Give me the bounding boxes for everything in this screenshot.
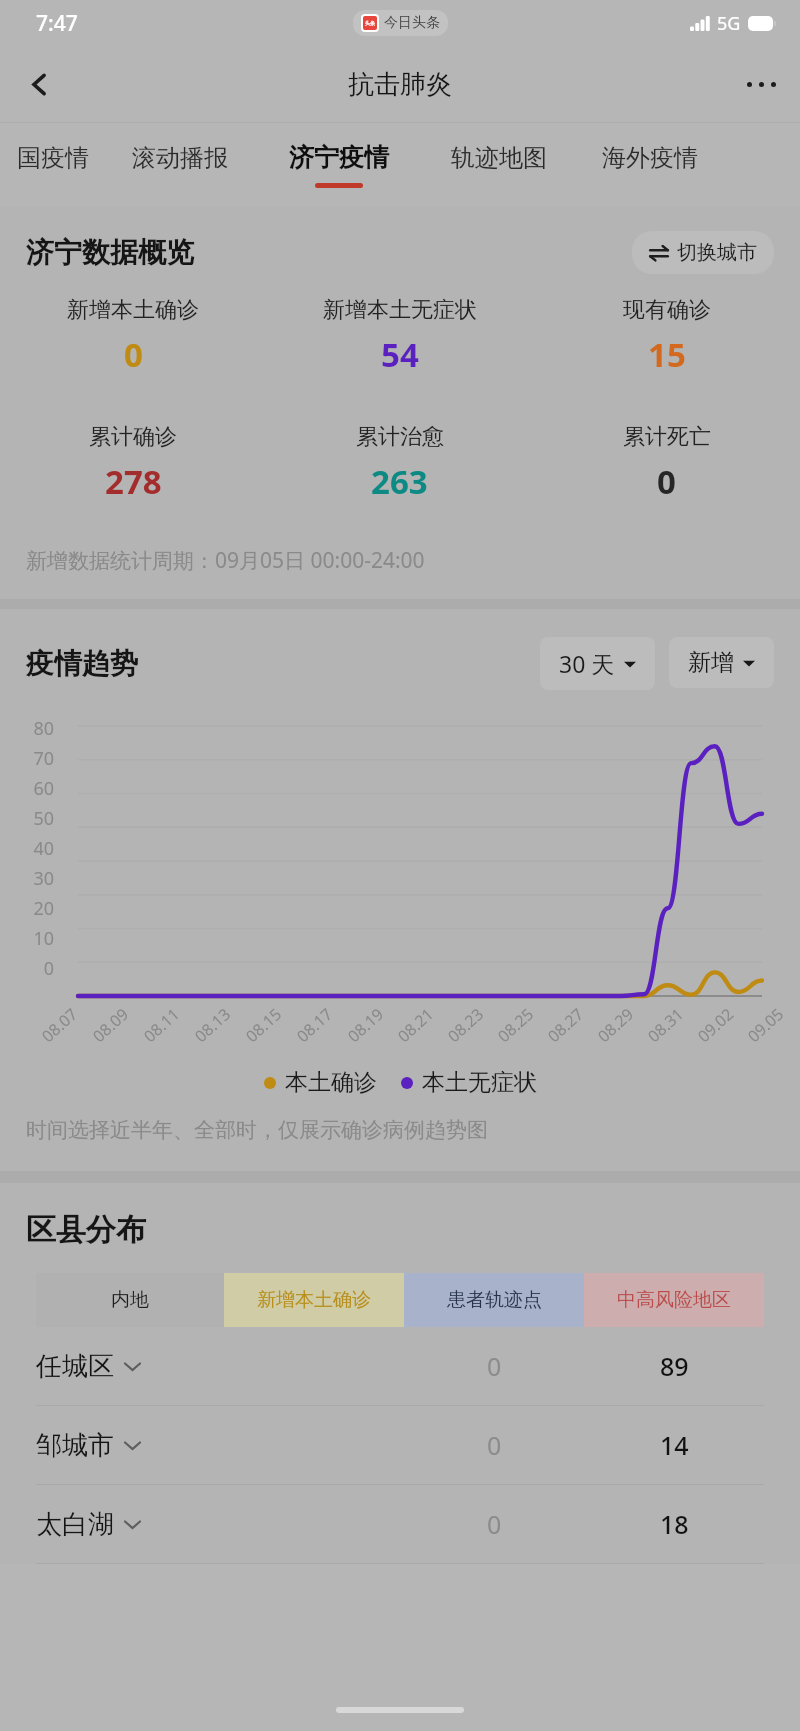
staticText: 海外疫情 bbox=[602, 143, 698, 173]
button[interactable]: 新增 bbox=[669, 637, 774, 688]
staticText: 累计确诊 bbox=[89, 423, 177, 451]
staticText: 60 bbox=[0, 776, 54, 801]
staticText: 08.19 bbox=[343, 1003, 388, 1047]
staticText: 20 bbox=[0, 896, 54, 921]
staticText: 新增本土确诊 bbox=[257, 1288, 371, 1312]
button[interactable]: 累计死亡 bbox=[533, 423, 800, 504]
staticText: 疫情趋势 bbox=[26, 646, 138, 681]
button[interactable]: 现有确诊 bbox=[533, 296, 800, 377]
button[interactable]: 本土确诊 bbox=[264, 1068, 377, 1097]
staticText: 40 bbox=[0, 836, 54, 861]
staticText: 7:47 bbox=[36, 9, 78, 38]
staticText: 08.23 bbox=[443, 1003, 488, 1047]
staticText: 新增本土确诊 bbox=[67, 296, 199, 324]
button[interactable]: 新增本土确诊 bbox=[0, 296, 266, 377]
staticText: 08.21 bbox=[393, 1003, 438, 1047]
button[interactable]: 海外疫情 bbox=[575, 123, 725, 207]
button[interactable]: 国疫情 bbox=[0, 123, 105, 207]
staticText: 新增 bbox=[688, 648, 734, 677]
staticText: 0 bbox=[487, 1428, 502, 1462]
staticText: 济宁数据概览 bbox=[26, 235, 194, 270]
staticText: 08.27 bbox=[543, 1003, 588, 1047]
button[interactable]: 累计确诊 bbox=[0, 423, 266, 504]
staticText: 本土确诊 bbox=[285, 1068, 377, 1097]
staticText: 头条 bbox=[365, 20, 375, 26]
button[interactable]: 轨迹地图 bbox=[423, 123, 575, 207]
staticText: 中高风险地区 bbox=[617, 1288, 731, 1312]
staticText: 30 bbox=[0, 866, 54, 891]
button[interactable]: 新增本土确诊 bbox=[224, 1273, 404, 1327]
button[interactable]: 太白湖 bbox=[36, 1485, 764, 1563]
staticText: 今日头条 bbox=[384, 14, 440, 32]
staticText: 08.13 bbox=[190, 1003, 235, 1047]
staticText: 70 bbox=[0, 746, 54, 771]
staticText: 15 bbox=[648, 332, 686, 377]
button[interactable]: 内地 bbox=[36, 1273, 224, 1327]
staticText: 切换城市 bbox=[677, 240, 757, 265]
staticText: 278 bbox=[105, 459, 162, 504]
button[interactable]: More options bbox=[734, 57, 788, 111]
staticText: 89 bbox=[660, 1349, 689, 1383]
staticText: 80 bbox=[0, 716, 54, 741]
button[interactable]: 邹城市 bbox=[36, 1406, 764, 1484]
staticText: 内地 bbox=[111, 1288, 149, 1312]
staticText: 08.09 bbox=[88, 1003, 133, 1047]
staticText: 本土无症状 bbox=[422, 1068, 537, 1097]
button[interactable]: 患者轨迹点 bbox=[404, 1273, 584, 1327]
staticText: 08.31 bbox=[643, 1003, 688, 1047]
button[interactable]: 切换城市 bbox=[632, 231, 774, 274]
staticText: 09.02 bbox=[693, 1003, 738, 1047]
staticText: 0 bbox=[124, 332, 143, 377]
staticText: 太白湖 bbox=[36, 1508, 114, 1541]
staticText: 患者轨迹点 bbox=[447, 1288, 542, 1312]
button[interactable]: 本土无症状 bbox=[401, 1068, 537, 1097]
staticText: 08.15 bbox=[241, 1003, 286, 1047]
staticText: 济宁疫情 bbox=[289, 142, 389, 173]
staticText: 时间选择近半年、全部时，仅展示确诊病例趋势图 bbox=[26, 1117, 488, 1143]
staticText: 54 bbox=[381, 332, 419, 377]
staticText: 轨迹地图 bbox=[451, 143, 547, 173]
staticText: 09.05 bbox=[743, 1003, 788, 1047]
button[interactable]: 30 天 bbox=[540, 637, 655, 690]
staticText: 30 天 bbox=[559, 648, 615, 679]
staticText: 0 bbox=[0, 956, 54, 981]
staticText: 国疫情 bbox=[17, 143, 89, 173]
staticText: 任城区 bbox=[36, 1350, 114, 1383]
staticText: 现有确诊 bbox=[623, 296, 711, 324]
staticText: 0 bbox=[487, 1507, 502, 1541]
staticText: 5G bbox=[717, 11, 741, 36]
button[interactable]: 济宁疫情 bbox=[255, 123, 423, 207]
button[interactable]: 累计治愈 bbox=[266, 423, 533, 504]
button[interactable]: 新增本土无症状 bbox=[266, 296, 533, 377]
staticText: 累计治愈 bbox=[356, 423, 444, 451]
staticText: 14 bbox=[660, 1428, 689, 1462]
staticText: 08.29 bbox=[593, 1003, 638, 1047]
staticText: 0 bbox=[487, 1349, 502, 1383]
staticText: 新增数据统计周期：09月05日 00:00-24:00 bbox=[26, 546, 425, 575]
staticText: 263 bbox=[371, 459, 428, 504]
button[interactable]: 任城区 bbox=[36, 1327, 764, 1405]
button[interactable]: Back bbox=[12, 57, 66, 111]
staticText: 08.25 bbox=[493, 1003, 538, 1047]
staticText: 邹城市 bbox=[36, 1429, 114, 1462]
button[interactable]: 中高风险地区 bbox=[584, 1273, 764, 1327]
button[interactable]: 滚动播报 bbox=[105, 123, 255, 207]
staticText: 08.11 bbox=[139, 1003, 184, 1047]
staticText: 10 bbox=[0, 926, 54, 951]
staticText: 累计死亡 bbox=[623, 423, 711, 451]
staticText: 08.17 bbox=[292, 1003, 337, 1047]
staticText: 滚动播报 bbox=[132, 143, 228, 173]
staticText: 0 bbox=[657, 459, 676, 504]
staticText: 新增本土无症状 bbox=[323, 296, 477, 324]
staticText: 18 bbox=[660, 1507, 689, 1541]
staticText: 抗击肺炎 bbox=[348, 68, 452, 101]
staticText: 50 bbox=[0, 806, 54, 831]
staticText: 08.07 bbox=[37, 1003, 82, 1047]
staticText: 区县分布 bbox=[26, 1211, 146, 1249]
